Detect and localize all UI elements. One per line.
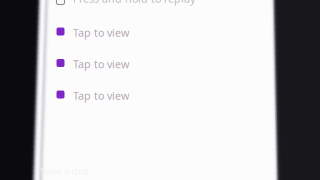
- button[interactable]: Press and hold to replay: [41, 0, 320, 16]
- staticText: Press and hold to replay: [73, 0, 195, 6]
- staticText: Tap to view: [73, 57, 129, 71]
- staticText: Tap to view: [73, 25, 129, 40]
- staticText: Send a chat: [40, 165, 89, 177]
- button[interactable]: Tap to view: [41, 48, 320, 78]
- button[interactable]: Tap to view: [41, 79, 320, 109]
- button[interactable]: Tap to view: [41, 16, 320, 46]
- staticText: Tap to view: [73, 88, 129, 103]
- button[interactable]: Send a chat: [38, 162, 168, 180]
